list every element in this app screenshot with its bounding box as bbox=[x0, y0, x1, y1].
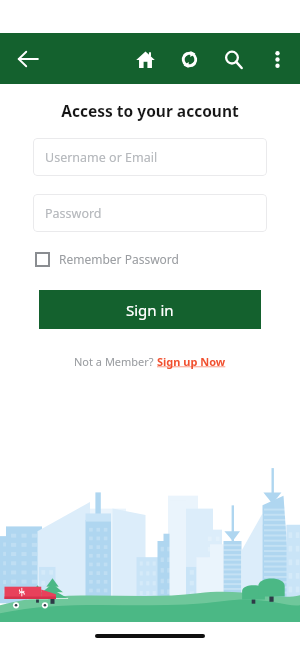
button[interactable]: Back bbox=[9, 40, 47, 78]
button[interactable]: Refresh bbox=[167, 37, 211, 81]
button[interactable]: More options bbox=[255, 37, 299, 81]
staticText: Username or Email bbox=[45, 149, 158, 166]
staticText: Sign up Now bbox=[157, 354, 226, 369]
button[interactable]: Home bbox=[123, 37, 167, 81]
button[interactable]: Sign up Now bbox=[157, 354, 226, 369]
staticText: Access to your account bbox=[0, 100, 300, 121]
staticText: Not a Member? bbox=[74, 354, 157, 369]
staticText: Remember Password bbox=[59, 251, 179, 267]
button[interactable]: Username or Email bbox=[33, 138, 267, 176]
button[interactable]: Sign in bbox=[39, 290, 261, 329]
button[interactable]: Search bbox=[211, 37, 255, 81]
button[interactable]: Remember Password bbox=[33, 247, 181, 271]
staticText: Sign in bbox=[126, 300, 174, 320]
staticText: Password bbox=[45, 205, 102, 222]
button[interactable]: Password bbox=[33, 194, 267, 232]
